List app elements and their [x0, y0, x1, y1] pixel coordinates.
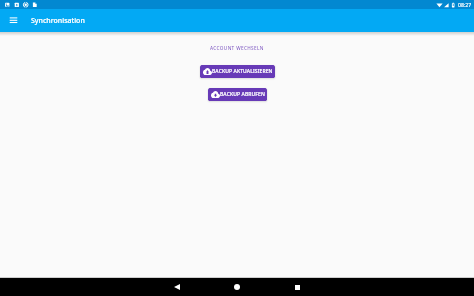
staticText: ACCOUNT WECHSELN [210, 45, 264, 51]
button[interactable]: Back [162, 278, 192, 296]
button[interactable]: Recent apps [282, 278, 312, 296]
button[interactable]: ACCOUNT WECHSELN [204, 43, 270, 53]
staticText: BACKUP AKTUALISIEREN [212, 68, 273, 75]
staticText: Synchronisation [31, 16, 85, 26]
button[interactable]: BACKUP ABRUFEN [208, 88, 267, 101]
button[interactable]: BACKUP AKTUALISIEREN [200, 65, 275, 78]
button[interactable]: Open navigation menu [0, 9, 27, 32]
staticText: BACKUP ABRUFEN [220, 91, 265, 98]
button[interactable]: Home [222, 278, 252, 296]
staticText: 08:27 [458, 1, 472, 8]
